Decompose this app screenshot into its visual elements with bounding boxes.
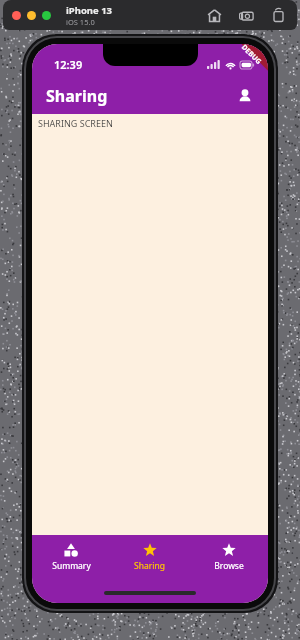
button[interactable]: Home [204,5,224,25]
staticText: Sharing [46,85,108,107]
button[interactable] [12,11,21,20]
staticText: iPhone 13 [66,4,113,17]
button[interactable]: Sharing [110,541,189,574]
staticText: 12:39 [54,57,83,72]
button[interactable]: Summary [32,541,110,574]
button[interactable] [42,11,51,20]
button[interactable]: Account [230,81,260,111]
staticText: Sharing [134,560,165,572]
button[interactable]: Screenshot [236,5,256,25]
staticText: Browse [214,560,244,572]
button[interactable]: Rotate [268,5,288,25]
button[interactable] [27,11,36,20]
staticText: Summary [52,560,91,572]
staticText: SHARING SCREEN [38,117,113,129]
button[interactable]: Browse [189,541,268,574]
staticText: iOS 15.0 [66,17,95,27]
staticText: DEBUG [239,44,264,67]
